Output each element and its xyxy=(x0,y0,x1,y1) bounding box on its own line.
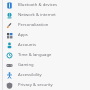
button[interactable]: Privacy & security xyxy=(0,80,90,90)
button[interactable]: Apps xyxy=(0,30,90,40)
button[interactable]: Accounts xyxy=(0,40,90,50)
staticText: Network & internet xyxy=(18,12,56,18)
button[interactable]: Time & language xyxy=(0,50,90,60)
staticText: Time & language xyxy=(18,52,52,58)
staticText: Personalization xyxy=(18,22,49,28)
button[interactable]: Accessibility xyxy=(0,70,90,80)
staticText: Gaming xyxy=(18,62,34,68)
staticText: Bluetooth & devices xyxy=(18,2,58,8)
staticText: Accounts xyxy=(18,42,36,48)
button[interactable]: Personalization xyxy=(0,20,90,30)
button[interactable]: Network & internet xyxy=(0,10,90,20)
staticText: Accessibility xyxy=(18,72,42,78)
staticText: Apps xyxy=(18,32,28,38)
button[interactable]: Gaming xyxy=(0,60,90,70)
staticText: Privacy & security xyxy=(18,82,53,88)
button[interactable]: Bluetooth & devices xyxy=(0,0,90,10)
